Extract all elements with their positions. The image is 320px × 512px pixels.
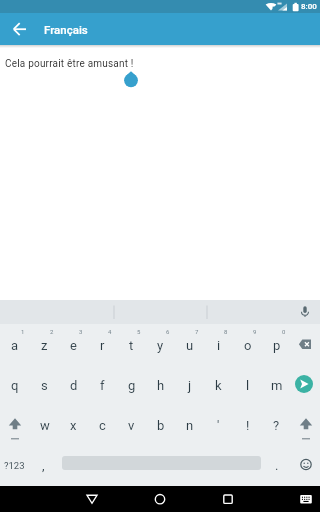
button[interactable] bbox=[293, 486, 319, 512]
staticText: 7 bbox=[195, 328, 199, 335]
button[interactable]: a bbox=[0, 324, 30, 364]
staticText: g bbox=[128, 378, 136, 393]
staticText: w bbox=[40, 418, 50, 433]
staticText: e bbox=[70, 338, 77, 353]
button[interactable]: f bbox=[88, 364, 117, 404]
staticText: p bbox=[273, 338, 281, 353]
staticText: ? bbox=[273, 418, 280, 433]
staticText: j bbox=[188, 378, 192, 393]
button[interactable] bbox=[0, 404, 30, 445]
button[interactable]: u bbox=[175, 324, 204, 364]
staticText: m bbox=[271, 378, 283, 393]
button[interactable] bbox=[147, 486, 173, 512]
staticText: 8 bbox=[224, 328, 228, 335]
staticText: u bbox=[186, 338, 194, 353]
staticText: d bbox=[70, 378, 78, 393]
button[interactable]: ' bbox=[204, 404, 233, 445]
button[interactable] bbox=[58, 445, 262, 486]
button[interactable] bbox=[291, 364, 320, 404]
button[interactable]: . bbox=[262, 445, 291, 486]
staticText: i bbox=[217, 338, 221, 353]
staticText: , bbox=[42, 458, 45, 473]
staticText: b bbox=[157, 418, 165, 433]
staticText: s bbox=[41, 378, 48, 393]
staticText: y bbox=[157, 338, 164, 353]
staticText: r bbox=[100, 338, 105, 353]
button[interactable]: y bbox=[146, 324, 175, 364]
staticText: 0 bbox=[282, 328, 286, 335]
button[interactable] bbox=[215, 486, 241, 512]
staticText: f bbox=[100, 378, 105, 393]
button[interactable] bbox=[292, 300, 320, 324]
staticText: o bbox=[244, 338, 252, 353]
staticText: 6 bbox=[166, 328, 170, 335]
button[interactable] bbox=[291, 404, 320, 445]
button[interactable]: d bbox=[59, 364, 88, 404]
staticText: 9 bbox=[253, 328, 257, 335]
button[interactable] bbox=[119, 70, 143, 94]
button[interactable]: s bbox=[30, 364, 59, 404]
button[interactable]: m bbox=[262, 364, 291, 404]
button[interactable]: w bbox=[30, 404, 59, 445]
button[interactable]: o bbox=[233, 324, 262, 364]
staticText: t bbox=[129, 338, 134, 353]
staticText: h bbox=[157, 378, 165, 393]
staticText: a bbox=[11, 338, 19, 353]
button[interactable]: c bbox=[88, 404, 117, 445]
button[interactable]: h bbox=[146, 364, 175, 404]
button[interactable]: j bbox=[175, 364, 204, 404]
staticText: n bbox=[186, 418, 194, 433]
button[interactable]: ! bbox=[233, 404, 262, 445]
button[interactable]: ?123 bbox=[0, 445, 29, 486]
staticText: ! bbox=[246, 418, 250, 433]
button[interactable] bbox=[291, 324, 320, 364]
button[interactable]: b bbox=[146, 404, 175, 445]
button[interactable]: k bbox=[204, 364, 233, 404]
staticText: l bbox=[246, 378, 250, 393]
button[interactable]: n bbox=[175, 404, 204, 445]
staticText: Français bbox=[44, 23, 88, 36]
staticText: 5 bbox=[137, 328, 141, 335]
button[interactable] bbox=[0, 13, 40, 45]
staticText: v bbox=[128, 418, 135, 433]
button[interactable]: t bbox=[117, 324, 146, 364]
staticText: 4 bbox=[108, 328, 112, 335]
staticText: c bbox=[99, 418, 106, 433]
staticText: 2 bbox=[50, 328, 54, 335]
button[interactable]: l bbox=[233, 364, 262, 404]
button[interactable]: p bbox=[262, 324, 291, 364]
button[interactable]: q bbox=[0, 364, 30, 404]
staticText: . bbox=[275, 458, 279, 473]
button[interactable]: ? bbox=[262, 404, 291, 445]
button[interactable]: e bbox=[59, 324, 88, 364]
button[interactable]: z bbox=[30, 324, 59, 364]
button[interactable]: r bbox=[88, 324, 117, 364]
staticText: Cela pourrait être amusant ! bbox=[5, 58, 134, 70]
staticText: z bbox=[41, 338, 48, 353]
staticText: ' bbox=[217, 418, 220, 433]
button[interactable]: i bbox=[204, 324, 233, 364]
button[interactable]: x bbox=[59, 404, 88, 445]
staticText: k bbox=[215, 378, 222, 393]
staticText: 8:00 bbox=[301, 2, 317, 11]
button[interactable] bbox=[291, 445, 320, 486]
staticText: 3 bbox=[79, 328, 83, 335]
staticText: q bbox=[11, 378, 19, 393]
button[interactable]: , bbox=[29, 445, 58, 486]
button[interactable] bbox=[79, 486, 105, 512]
button[interactable]: g bbox=[117, 364, 146, 404]
staticText: ?123 bbox=[4, 460, 25, 471]
button[interactable]: v bbox=[117, 404, 146, 445]
staticText: 1 bbox=[21, 328, 25, 335]
staticText: x bbox=[70, 418, 77, 433]
